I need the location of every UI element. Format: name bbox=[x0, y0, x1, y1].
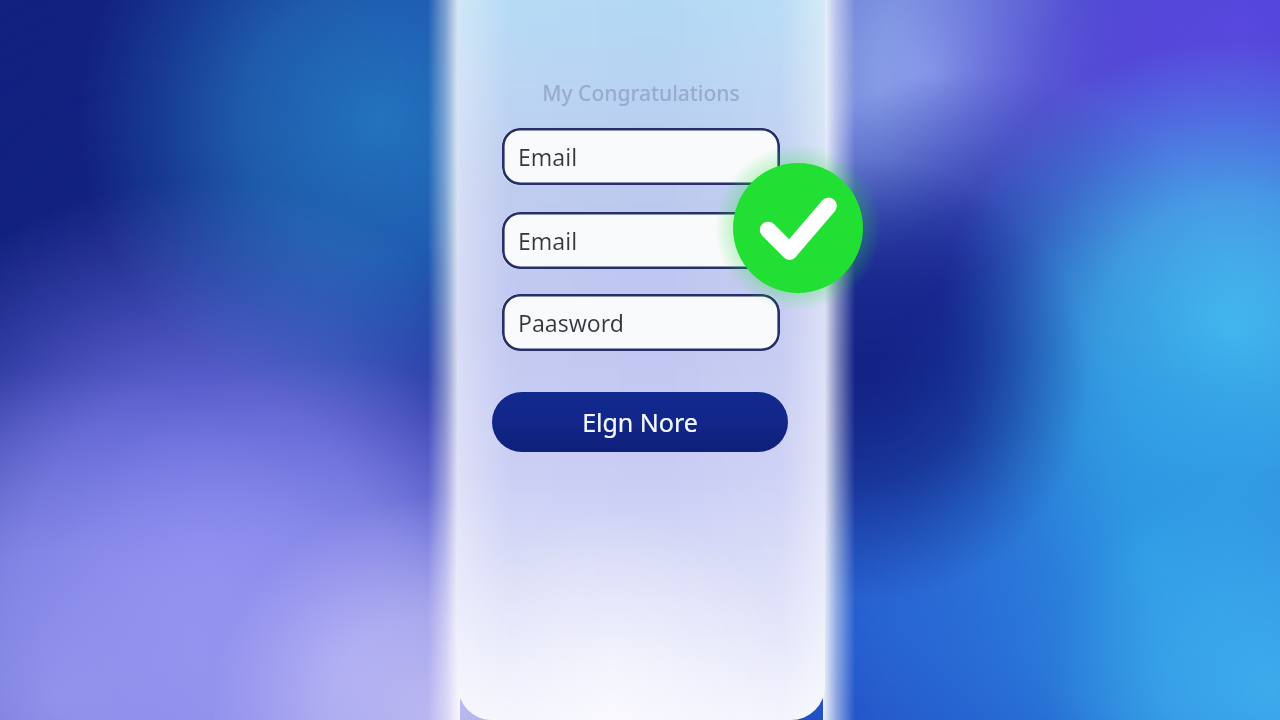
button[interactable]: Elgn Nore bbox=[492, 392, 788, 452]
button[interactable]: Paasword bbox=[502, 294, 780, 351]
staticText: My Congratulations bbox=[542, 79, 740, 108]
other: Verified bbox=[0, 0, 1280, 720]
staticText: Email bbox=[518, 141, 578, 172]
button[interactable]: Email bbox=[502, 212, 780, 269]
staticText: Email bbox=[518, 225, 578, 256]
staticText: Elgn Nore bbox=[582, 405, 698, 439]
staticText: Paasword bbox=[518, 307, 624, 338]
button[interactable]: Email bbox=[502, 128, 780, 185]
